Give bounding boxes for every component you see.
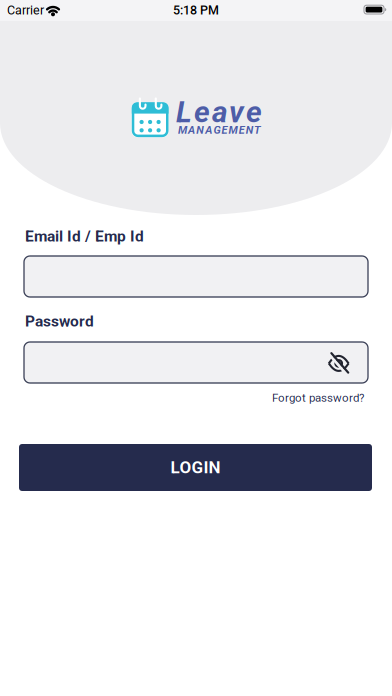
button[interactable]: LOGIN <box>19 444 372 491</box>
button[interactable]: Email Id / Emp Id <box>24 256 368 297</box>
staticText: Forgot password? <box>272 391 364 404</box>
staticText: Email Id / Emp Id <box>25 227 144 245</box>
staticText: Password <box>25 312 94 330</box>
button[interactable]: Show password <box>321 345 357 381</box>
button[interactable]: Password <box>24 342 368 383</box>
staticText: MANAGEMENT <box>178 123 261 136</box>
staticText: Leave <box>176 94 262 130</box>
button[interactable]: Forgot password? <box>272 391 364 404</box>
staticText: 5:18 PM <box>173 3 219 17</box>
staticText: LOGIN <box>170 457 220 477</box>
staticText: Carrier <box>7 3 44 17</box>
